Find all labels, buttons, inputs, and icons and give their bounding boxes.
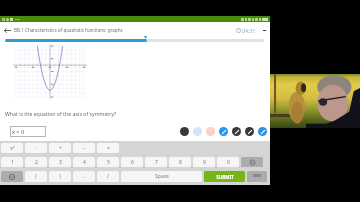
button[interactable]: More options	[260, 26, 268, 34]
button[interactable]: 04:31	[235, 27, 257, 34]
staticText: 8	[179, 159, 182, 166]
staticText: ×	[107, 145, 110, 152]
button[interactable]: Pen tool	[219, 127, 228, 136]
staticText: 1	[11, 159, 14, 166]
button[interactable]: 5	[97, 157, 119, 167]
button[interactable]: 3	[49, 157, 71, 167]
staticText: )	[59, 173, 61, 180]
staticText: BB.1 Characteristics of quadratic functi…	[14, 27, 123, 33]
staticText: Space	[155, 173, 169, 180]
button[interactable]: x = 0	[10, 126, 46, 137]
staticText: −	[83, 145, 86, 152]
button[interactable]: Space	[121, 171, 202, 182]
button[interactable]: Light blue pen	[193, 127, 202, 136]
staticText: 9	[203, 159, 206, 166]
staticText: SUBMIT	[216, 174, 234, 180]
staticText: x²	[10, 145, 15, 152]
button[interactable]: 2	[25, 157, 47, 167]
staticText: 2	[35, 159, 38, 166]
button[interactable]: Clear all	[258, 127, 267, 136]
staticText: ,	[83, 173, 85, 180]
button[interactable]: SUBMIT	[204, 171, 245, 182]
button[interactable]: Back	[0, 23, 14, 37]
staticText: 04:31	[242, 27, 256, 34]
button[interactable]: Hide keyboard	[247, 171, 267, 182]
button[interactable]: 0	[217, 157, 239, 167]
button[interactable]: (	[25, 171, 47, 182]
staticText: 0	[227, 159, 230, 166]
staticText: 3	[59, 159, 62, 166]
button[interactable]: 8	[169, 157, 191, 167]
button[interactable]: x²	[1, 143, 23, 153]
button[interactable]: ×	[97, 143, 119, 153]
button[interactable]: 7	[145, 157, 167, 167]
button[interactable]: Change keyboard	[1, 171, 23, 182]
staticText: ·	[35, 145, 37, 152]
staticText: 6	[131, 159, 134, 166]
button[interactable]: Backspace	[241, 157, 263, 167]
staticText: x = 0	[12, 128, 25, 135]
staticText: +	[59, 145, 62, 152]
button[interactable]: ·	[25, 143, 47, 153]
staticText: /	[107, 173, 109, 180]
staticText: 7	[155, 159, 158, 166]
button[interactable]: 4	[73, 157, 95, 167]
staticText: What is the equation of the axis of symm…	[5, 110, 117, 117]
staticText: 5	[107, 159, 110, 166]
button[interactable]: /	[97, 171, 119, 182]
button[interactable]: Undo	[245, 127, 254, 136]
button[interactable]: 6	[121, 157, 143, 167]
button[interactable]: ,	[73, 171, 95, 182]
staticText: (	[35, 173, 37, 180]
button[interactable]: 9	[193, 157, 215, 167]
button[interactable]: +	[49, 143, 71, 153]
button[interactable]: −	[73, 143, 95, 153]
button[interactable]: Black pen	[180, 127, 189, 136]
button[interactable]: 1	[1, 157, 23, 167]
button[interactable]: Eraser	[232, 127, 241, 136]
staticText: 4	[83, 159, 86, 166]
button[interactable]: )	[49, 171, 71, 182]
button[interactable]: Pink pen	[206, 127, 215, 136]
